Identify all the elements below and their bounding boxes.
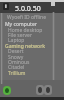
button[interactable]: Help [44,85,52,95]
button[interactable]: Desert [0,48,64,53]
staticText: My computer [5,21,37,26]
button[interactable]: File server [0,32,64,37]
button[interactable]: Trillium [0,70,64,75]
button[interactable]: Gaming network [0,43,64,48]
staticText: Citadel [8,64,25,69]
staticText: Desert [8,48,24,53]
staticText: Wyoefi ID offline [7,14,46,21]
button[interactable]: Ominous [0,59,64,64]
staticText: Gaming network [5,43,46,48]
staticText: 5.0.0.50 [15,4,41,14]
button[interactable]: My computer [0,21,64,26]
button[interactable]: Snowy [0,54,64,59]
button[interactable]: Laptop [0,37,64,42]
staticText: Trillium [8,70,26,75]
button[interactable]: Settings [36,85,44,95]
button[interactable]: Home desktop [0,27,64,32]
button[interactable]: App menu [3,3,9,10]
staticText: File server [8,32,33,37]
staticText: Laptop [8,37,25,42]
button[interactable]: Citadel [0,64,64,69]
staticText: Ominous [8,59,30,64]
staticText: Home desktop [8,27,43,32]
staticText: Snowy [8,54,24,59]
button[interactable]: Connect [3,86,11,95]
